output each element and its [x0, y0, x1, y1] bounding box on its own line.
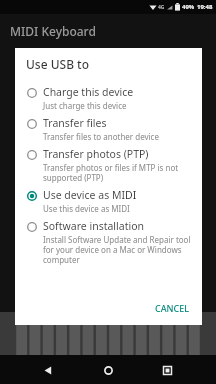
staticText: Just charge this device — [43, 100, 127, 111]
staticText: MIDI Keyboard — [10, 23, 96, 39]
staticText: Use device as MIDI — [43, 188, 137, 202]
button[interactable]: Home — [96, 358, 120, 382]
staticText: Transfer photos or files if MTP is not s… — [43, 162, 192, 183]
staticText: Charge this device — [43, 85, 134, 99]
staticText: Software installation — [43, 219, 144, 233]
staticText: Use USB to — [26, 56, 90, 72]
button[interactable]: Software installation — [15, 216, 202, 267]
staticText: Transfer files — [43, 116, 107, 130]
button[interactable]: Recents — [155, 358, 179, 382]
staticText: Transfer photos (PTP) — [43, 147, 149, 161]
button[interactable]: Use device as MIDI — [15, 185, 202, 216]
staticText: 4G — [158, 4, 165, 11]
staticText: Install Software Update and Repair tool … — [43, 234, 192, 265]
staticText: 19:48 — [197, 3, 213, 11]
button[interactable]: Transfer files — [15, 113, 202, 144]
button[interactable]: Transfer photos (PTP) — [15, 144, 202, 185]
button[interactable]: Charge this device — [15, 82, 202, 113]
staticText: CANCEL — [155, 302, 190, 314]
button[interactable]: CANCEL — [149, 297, 196, 319]
button[interactable]: Back — [36, 358, 60, 382]
button[interactable]: Piano keys — [0, 312, 216, 355]
staticText: Use this device as MIDI — [43, 203, 130, 214]
staticText: Transfer files to another device — [43, 131, 159, 142]
staticText: 49% — [182, 3, 195, 11]
